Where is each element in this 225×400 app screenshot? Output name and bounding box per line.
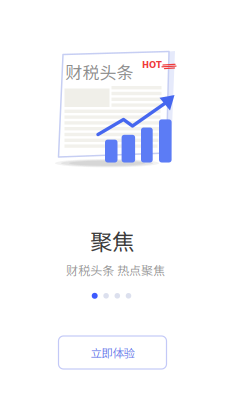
staticText: 聚焦	[90, 224, 134, 257]
button[interactable]: 立即体验	[58, 336, 166, 369]
staticText: 立即体验	[90, 344, 134, 361]
staticText: HOT	[142, 60, 162, 70]
staticText: 财税头条 热点聚焦	[66, 261, 165, 279]
staticText: 财税头条	[65, 59, 133, 84]
